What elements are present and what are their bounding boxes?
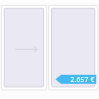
staticText: 2.657 € (70, 75, 94, 84)
